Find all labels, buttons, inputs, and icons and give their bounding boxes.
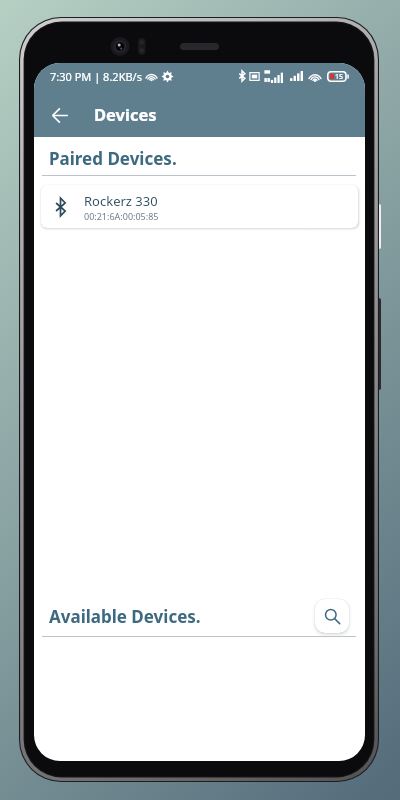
staticText: Rockerz 330 xyxy=(84,192,158,210)
staticText: Paired Devices. xyxy=(49,147,177,170)
staticText: Devices xyxy=(94,103,157,125)
button[interactable]: Back xyxy=(42,95,78,131)
staticText: 7:30 PM | 8.2KB/s xyxy=(50,69,142,84)
button[interactable]: Search xyxy=(315,599,349,633)
staticText: 00:21:6A:00:05:85 xyxy=(84,210,159,222)
staticText: Available Devices. xyxy=(49,605,201,628)
staticText: 15 xyxy=(335,72,344,82)
button[interactable]: Rockerz 330 xyxy=(41,185,358,228)
